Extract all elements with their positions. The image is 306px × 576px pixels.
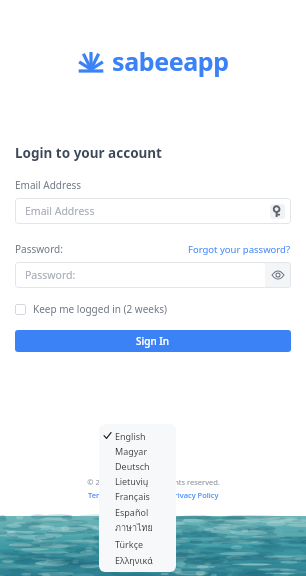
staticText: Ελληνικά bbox=[115, 554, 153, 566]
button[interactable]: English bbox=[99, 428, 176, 443]
staticText: Keep me logged in (2 weeks) bbox=[33, 302, 168, 316]
button[interactable]: Forgot your password? bbox=[188, 243, 291, 256]
button[interactable]: Terms & Conditions bbox=[88, 490, 158, 500]
staticText: Deutsch bbox=[115, 460, 150, 472]
button[interactable]: Türkçe bbox=[99, 536, 176, 552]
button[interactable]: ภาษาไทย bbox=[99, 520, 176, 536]
button[interactable]: Show password bbox=[265, 262, 291, 288]
staticText: Password: bbox=[15, 242, 63, 256]
button[interactable]: Privacy Policy bbox=[170, 490, 219, 500]
button[interactable]: Keep me logged in (2 weeks) bbox=[15, 302, 168, 316]
button[interactable]: Email Address bbox=[15, 198, 291, 224]
button[interactable]: Saved passwords bbox=[270, 204, 285, 219]
button[interactable] bbox=[128, 427, 176, 450]
staticText: Sign In bbox=[136, 334, 170, 348]
button[interactable]: Password: bbox=[15, 262, 291, 288]
staticText: Email Address bbox=[15, 178, 82, 192]
staticText: ภาษาไทย bbox=[115, 521, 153, 535]
staticText: Türkçe bbox=[115, 538, 144, 550]
staticText: Privacy Policy bbox=[170, 490, 219, 500]
staticText: © 2024 SabeeApp. All rights reserved. bbox=[87, 477, 220, 487]
button[interactable]: Français bbox=[99, 488, 176, 504]
staticText: Forgot your password? bbox=[188, 243, 291, 256]
staticText: English bbox=[115, 430, 146, 442]
button[interactable]: Deutsch bbox=[99, 458, 176, 473]
button[interactable]: Español bbox=[99, 504, 176, 520]
staticText: Email Address bbox=[25, 204, 95, 218]
staticText: Login to your account bbox=[15, 144, 162, 162]
button[interactable]: Sign In bbox=[15, 330, 291, 352]
staticText: Español bbox=[115, 506, 149, 518]
staticText: Terms & Conditions bbox=[88, 490, 158, 500]
button[interactable]: Ελληνικά bbox=[99, 552, 176, 568]
staticText: Lietuvių bbox=[115, 475, 149, 487]
staticText: Français bbox=[115, 490, 150, 502]
staticText: sabeeapp bbox=[112, 44, 229, 78]
staticText: Password: bbox=[25, 268, 265, 282]
staticText: Magyar bbox=[115, 445, 148, 457]
button[interactable]: Lietuvių bbox=[99, 473, 176, 488]
button[interactable]: Magyar bbox=[99, 443, 176, 458]
